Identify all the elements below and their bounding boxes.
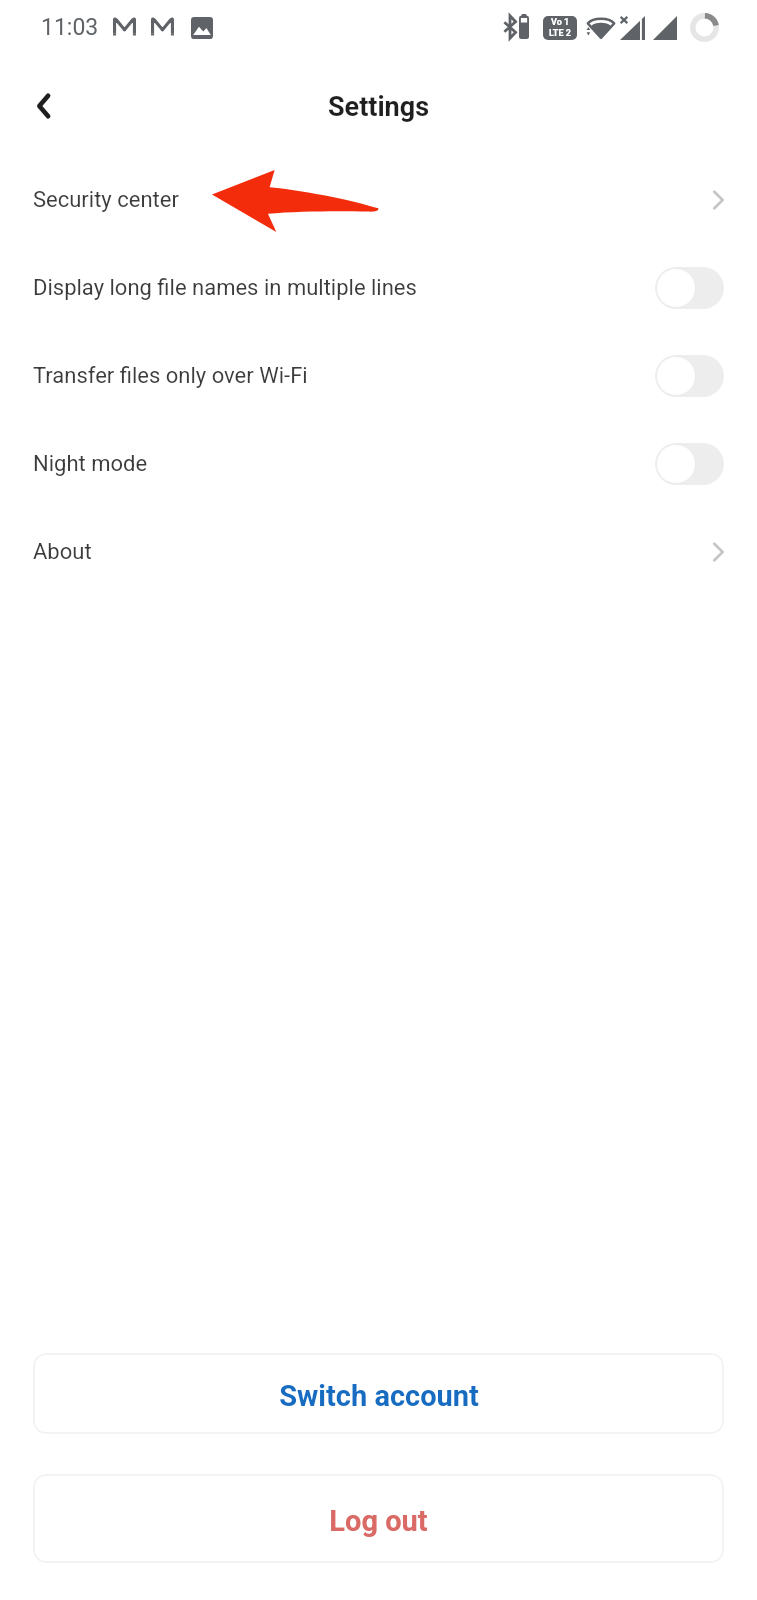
button[interactable]: Toggle Night mode [655,443,724,485]
button[interactable]: Security center [0,156,757,244]
button[interactable]: Log out [33,1474,724,1563]
staticText: Settings [328,91,430,123]
staticText: Vo 1 [551,17,570,28]
staticText: Display long file names in multiple line… [33,275,417,301]
button[interactable]: Switch account [33,1353,724,1434]
staticText: Log out [329,1504,428,1538]
staticText: Transfer files only over Wi-Fi [33,363,308,389]
button[interactable]: About [0,508,757,596]
staticText: About [33,539,92,565]
staticText: Security center [33,187,179,213]
button[interactable]: Display long file names in multiple line… [0,244,757,332]
button[interactable]: Toggle Transfer files only over Wi-Fi [655,355,724,397]
button[interactable]: Back [14,77,72,135]
staticText: Night mode [33,451,148,477]
staticText: LTE 2 [549,28,571,39]
button[interactable]: Transfer files only over Wi-Fi [0,332,757,420]
staticText: 11:03 [41,14,99,41]
button[interactable]: Night mode [0,420,757,508]
button[interactable]: Toggle Display long file names in multip… [655,267,724,309]
staticText: Switch account [279,1379,479,1413]
